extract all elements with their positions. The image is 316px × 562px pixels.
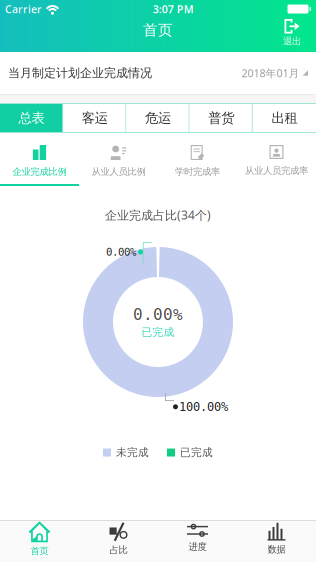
staticText: 危运 xyxy=(145,110,171,126)
button[interactable]: 总表 xyxy=(0,103,63,133)
button[interactable]: 占比 xyxy=(79,520,158,562)
staticText: 占比 xyxy=(109,544,127,556)
staticText: 普货 xyxy=(208,110,234,126)
staticText: 客运 xyxy=(82,110,108,126)
button[interactable]: 退出 xyxy=(273,19,311,51)
staticText: 学时完成率 xyxy=(175,166,220,177)
button[interactable]: 企业完成比例 xyxy=(0,133,79,186)
staticText: 100.00% xyxy=(179,400,228,414)
staticText: 企业完成占比(34个) xyxy=(105,207,211,223)
button[interactable]: 危运 xyxy=(126,103,190,133)
staticText: 首页 xyxy=(30,545,48,557)
button[interactable]: 2018年01月 xyxy=(241,66,308,80)
button[interactable]: 首页 xyxy=(0,520,79,562)
staticText: 企业完成比例 xyxy=(12,166,66,177)
button[interactable]: 出租 xyxy=(253,103,316,133)
staticText: 3:07 PM xyxy=(153,2,194,16)
button[interactable]: 从业人员比例 xyxy=(79,133,158,186)
button[interactable]: 数据 xyxy=(237,520,316,562)
button[interactable]: 学时完成率 xyxy=(158,133,237,186)
staticText: 总表 xyxy=(19,110,45,126)
staticText: 从业人员完成率 xyxy=(245,165,308,176)
staticText: 0.00% xyxy=(106,246,136,258)
staticText: 退出 xyxy=(283,35,301,47)
staticText: 首页 xyxy=(143,21,173,39)
staticText: 出租 xyxy=(271,110,297,126)
staticText: 数据 xyxy=(267,544,285,555)
staticText: 当月制定计划企业完成情况 xyxy=(8,66,152,80)
staticText: 已完成 xyxy=(180,446,213,459)
button[interactable]: 从业人员完成率 xyxy=(237,133,316,186)
button[interactable]: 普货 xyxy=(190,103,253,133)
staticText: Carrier xyxy=(5,2,42,16)
staticText: 2018年01月 xyxy=(241,66,299,80)
staticText: 从业人员比例 xyxy=(91,166,145,177)
button[interactable]: 客运 xyxy=(63,103,126,133)
staticText: 进度 xyxy=(188,541,206,552)
staticText: 0.00% xyxy=(133,305,183,324)
button[interactable]: 进度 xyxy=(158,520,237,562)
staticText: 未完成 xyxy=(116,446,149,459)
staticText: 已完成 xyxy=(141,325,174,339)
